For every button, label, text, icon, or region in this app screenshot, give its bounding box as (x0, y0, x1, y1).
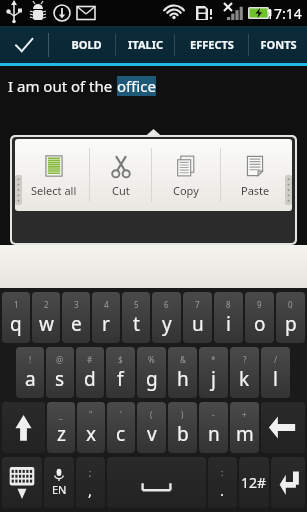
button[interactable]: 1 (2, 292, 30, 343)
staticText: 2 (44, 299, 49, 310)
staticText: t (133, 311, 140, 337)
staticText: v (147, 421, 157, 447)
staticText: $ (118, 354, 123, 365)
button[interactable]: - (199, 402, 228, 453)
staticText: m (236, 421, 254, 447)
staticText: ) (181, 409, 184, 420)
staticText: EN (52, 482, 67, 497)
staticText: ; (89, 466, 92, 478)
staticText: EFFECTS (190, 37, 234, 52)
staticText: 7 (195, 299, 200, 310)
staticText: office (117, 76, 156, 96)
staticText: p (285, 311, 297, 337)
staticText: Cut (112, 183, 130, 198)
staticText: 5 (134, 299, 139, 310)
button[interactable] (0, 245, 307, 288)
button[interactable]: : (208, 457, 237, 508)
button[interactable]: $ (106, 347, 135, 398)
button[interactable]: Select all (18, 139, 89, 211)
staticText: * (211, 354, 216, 365)
button[interactable]: / (261, 347, 290, 398)
staticText: _ (59, 409, 63, 420)
button[interactable]: & (168, 347, 197, 398)
button[interactable]: _ (47, 402, 75, 453)
staticText: l (273, 366, 278, 392)
button[interactable]: % (137, 347, 166, 398)
staticText: @ (56, 354, 64, 365)
staticText: FONTS (260, 37, 297, 52)
staticText: x (86, 421, 97, 447)
button[interactable]: # (76, 347, 104, 398)
button[interactable]: ; (76, 457, 105, 508)
button[interactable]: Cut (90, 139, 151, 211)
staticText: o (254, 311, 266, 337)
staticText: w (39, 311, 54, 337)
button[interactable]: Copy (152, 139, 220, 211)
button[interactable]: Space (107, 457, 206, 508)
button[interactable]: Hide keyboard (2, 457, 42, 508)
staticText: 12# (241, 473, 267, 492)
button[interactable]: 12# (239, 457, 269, 508)
staticText: g (146, 366, 158, 392)
button[interactable]: Done (0, 26, 48, 63)
button[interactable]: ( (137, 402, 166, 453)
button[interactable]: 2 (32, 292, 60, 343)
staticText: 17:14 (266, 4, 302, 23)
button[interactable]: 4 (92, 292, 120, 343)
button[interactable]: 3 (62, 292, 90, 343)
button[interactable]: @ (46, 347, 74, 398)
button[interactable]: EFFECTS (175, 26, 248, 63)
button[interactable]: ITALIC (116, 26, 174, 63)
button[interactable]: 5 (122, 292, 150, 343)
button[interactable]: 0 (276, 292, 305, 343)
staticText: : (221, 466, 224, 478)
button[interactable]: Enter (271, 457, 305, 508)
button[interactable]: Backspace (261, 402, 305, 453)
staticText: ( (150, 409, 153, 420)
button[interactable]: Shift (2, 402, 45, 453)
staticText: Select all (31, 183, 77, 198)
button[interactable]: ) (168, 402, 197, 453)
staticText: ! (29, 354, 32, 365)
staticText: % (148, 354, 155, 365)
staticText: - (212, 409, 215, 420)
staticText: u (192, 311, 204, 337)
staticText: ' (120, 409, 122, 420)
button[interactable]: Voice input (44, 457, 74, 508)
button[interactable]: BOLD (57, 26, 115, 63)
button[interactable]: + (230, 402, 259, 453)
staticText: I am out of the (8, 76, 117, 96)
button[interactable]: 9 (245, 292, 274, 343)
staticText: i (226, 311, 231, 337)
staticText: 1 (14, 299, 19, 310)
staticText: + (242, 409, 247, 420)
button[interactable]: 6 (152, 292, 181, 343)
staticText: h (177, 366, 189, 392)
staticText: # (87, 354, 93, 365)
staticText: 9 (257, 299, 262, 310)
staticText: 4 (104, 299, 109, 310)
button[interactable]: 7 (183, 292, 212, 343)
staticText: a (25, 366, 36, 392)
staticText: z (57, 421, 66, 447)
button[interactable]: Paste (221, 139, 289, 211)
button[interactable]: ! (16, 347, 44, 398)
button[interactable]: 8 (214, 292, 243, 343)
staticText: " (89, 409, 93, 420)
staticText: Paste (241, 183, 270, 198)
button[interactable]: * (199, 347, 228, 398)
button[interactable]: ' (107, 402, 135, 453)
staticText: d (84, 366, 96, 392)
staticText: / (274, 354, 277, 365)
staticText: 0 (288, 299, 293, 310)
button[interactable]: ? (230, 347, 259, 398)
button[interactable]: " (77, 402, 105, 453)
staticText: j (211, 366, 216, 392)
staticText: n (208, 421, 220, 447)
staticText: q (10, 311, 22, 337)
button[interactable]: FONTS (249, 26, 307, 63)
staticText: . (220, 480, 225, 500)
staticText: e (71, 311, 82, 337)
staticText: c (116, 421, 126, 447)
staticText: r (102, 311, 110, 337)
